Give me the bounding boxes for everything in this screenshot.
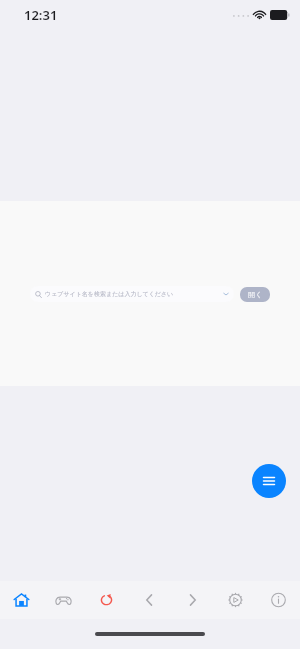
button[interactable]: Forward [171, 581, 214, 619]
button[interactable]: Settings [214, 581, 257, 619]
staticText: 開く [248, 290, 263, 299]
button[interactable]: Reload [85, 581, 128, 619]
button[interactable]: Games [42, 581, 85, 619]
button[interactable]: ウェブサイト名を検索または入力してください [30, 286, 234, 302]
button[interactable]: Info [257, 581, 300, 619]
staticText: 12:31 [24, 6, 58, 24]
button[interactable]: Menu [252, 464, 286, 498]
button[interactable]: Home [0, 581, 42, 619]
button[interactable]: Back [128, 581, 171, 619]
button[interactable]: 開く [240, 287, 270, 302]
staticText: ウェブサイト名を検索または入力してください [45, 290, 222, 298]
